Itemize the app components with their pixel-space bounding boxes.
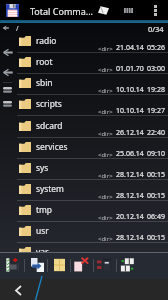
button[interactable]: sdcard xyxy=(0,117,168,138)
staticText: 21.04.14 xyxy=(116,43,144,53)
button[interactable]: sbin xyxy=(0,74,168,95)
button[interactable]: Back xyxy=(6,279,30,300)
staticText: var xyxy=(36,246,49,252)
staticText: 00:15 xyxy=(147,170,165,180)
staticText: usr xyxy=(36,225,49,236)
staticText: 22:40 xyxy=(147,128,165,138)
staticText: 09:10 xyxy=(147,149,165,159)
button[interactable]: system xyxy=(0,180,168,201)
button[interactable]: usr xyxy=(0,222,168,243)
staticText: root xyxy=(36,56,53,67)
staticText: 25.06.14 xyxy=(116,149,144,159)
button[interactable]: Copy xyxy=(28,254,47,276)
button[interactable]: tmp xyxy=(0,201,168,222)
staticText: sys xyxy=(36,162,49,173)
button[interactable]: Rename xyxy=(94,254,116,276)
staticText: <dir> xyxy=(98,130,113,138)
staticText: radio xyxy=(36,35,57,46)
button[interactable]: sys xyxy=(0,159,168,180)
staticText: 20.12.14 xyxy=(116,212,144,222)
button[interactable]: Current path xyxy=(0,23,168,32)
staticText: <dir> xyxy=(98,193,113,201)
staticText: / xyxy=(16,24,19,33)
staticText: 05:26 xyxy=(147,43,165,53)
staticText: 00:15 xyxy=(147,233,165,243)
staticText: 00:15 xyxy=(147,191,165,201)
button[interactable]: Mark xyxy=(93,0,113,21)
staticText: <dir> xyxy=(98,235,113,243)
staticText: 01.01.70 xyxy=(116,64,144,74)
staticText: 10.10.14 xyxy=(116,106,144,116)
button[interactable]: Swap panels xyxy=(117,254,138,276)
staticText: sbin xyxy=(36,77,53,88)
staticText: 03:00 xyxy=(147,64,165,74)
staticText: 0/34 xyxy=(148,24,164,33)
staticText: 28.12.14 xyxy=(116,170,144,180)
staticText: <dir> xyxy=(98,87,113,95)
button[interactable]: root xyxy=(0,53,168,74)
staticText: <dir> xyxy=(98,45,113,53)
staticText: 19:28 xyxy=(147,85,165,95)
button[interactable]: var xyxy=(0,243,168,252)
staticText: 19:27 xyxy=(147,106,165,116)
staticText: 28.12.14 xyxy=(116,191,144,201)
staticText: sdcard xyxy=(36,120,63,131)
staticText: 28.12.14 xyxy=(116,233,144,243)
staticText: <dir> xyxy=(98,66,113,74)
button[interactable]: New folder xyxy=(51,254,68,276)
button[interactable]: Select xyxy=(3,254,23,276)
staticText: Total Comma... xyxy=(30,5,94,17)
button[interactable]: More options xyxy=(145,0,165,21)
staticText: <dir> xyxy=(98,108,113,116)
staticText: <dir> xyxy=(98,214,113,222)
staticText: <dir> xyxy=(98,151,113,159)
staticText: scripts xyxy=(36,98,62,109)
staticText: tmp xyxy=(36,204,53,215)
button[interactable]: services xyxy=(0,138,168,159)
button[interactable]: radio xyxy=(0,32,168,53)
staticText: <dir> xyxy=(98,172,113,180)
staticText: 10.10.14 xyxy=(116,85,144,95)
staticText: 26.12.14 xyxy=(116,128,144,138)
staticText: services xyxy=(36,141,68,152)
button[interactable]: scripts xyxy=(0,95,168,116)
staticText: 06:49 xyxy=(147,212,165,222)
button[interactable]: View mode xyxy=(118,0,138,21)
button[interactable]: Delete xyxy=(71,254,91,276)
staticText: system xyxy=(36,183,64,194)
